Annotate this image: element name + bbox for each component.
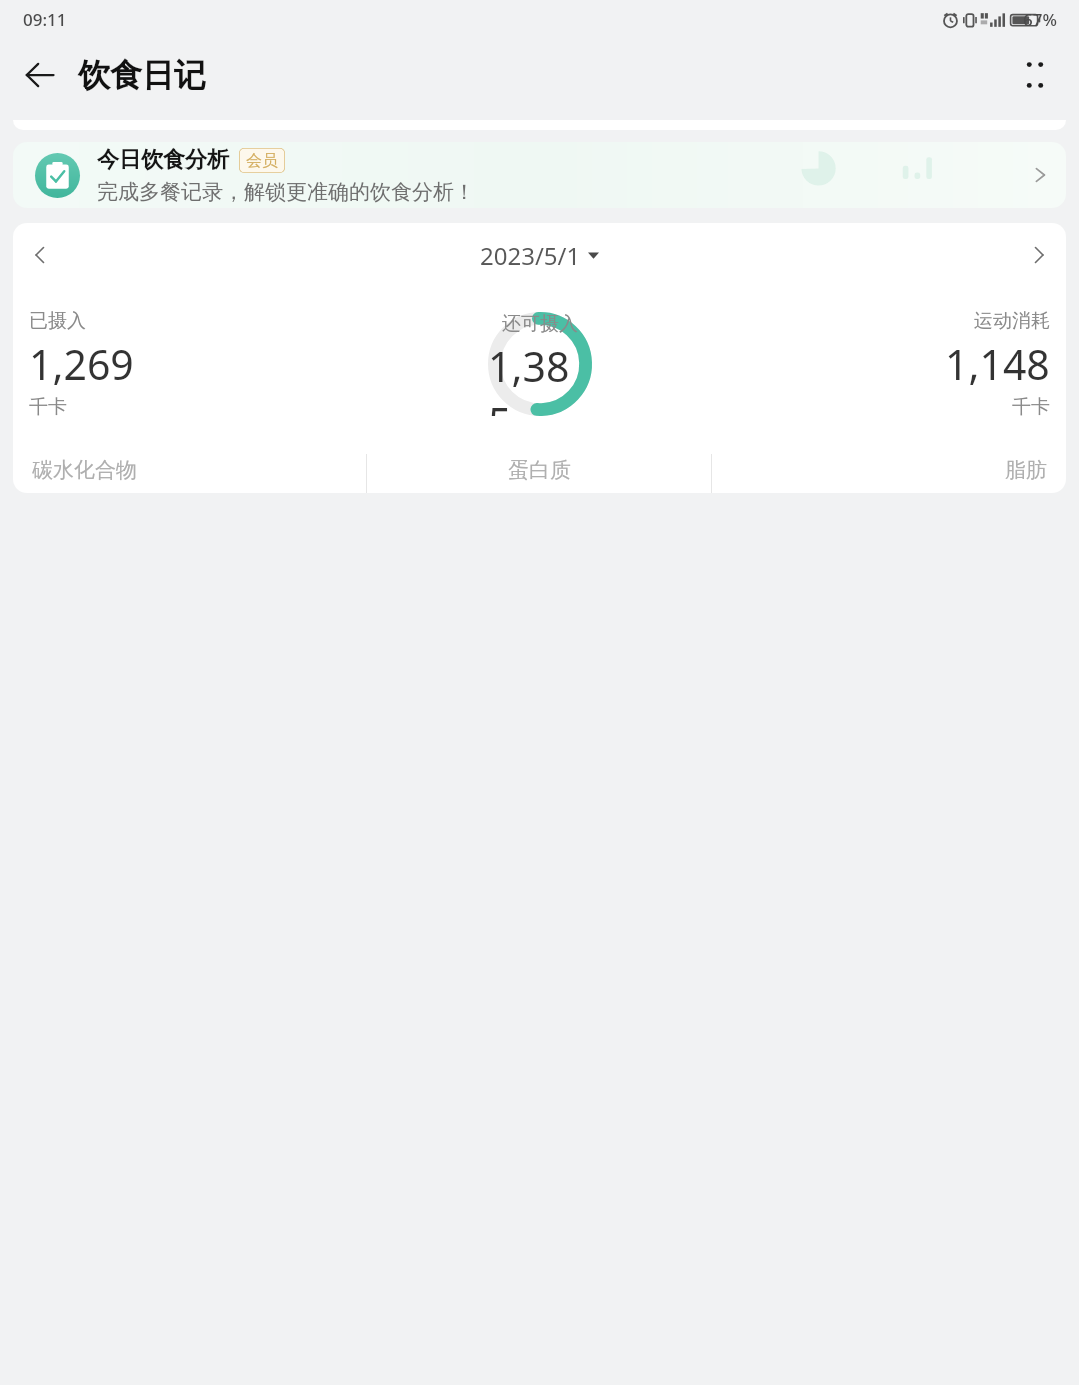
button[interactable]: Back (12, 47, 68, 103)
button[interactable]: 已摄入 (23, 305, 140, 423)
staticText: 脂肪 (1005, 457, 1047, 483)
staticText: 饮食日记 (78, 55, 206, 95)
button[interactable]: 碳水化合物 (23, 454, 366, 493)
staticText: 会员 (246, 151, 278, 171)
staticText: 1,385 (488, 338, 592, 416)
button[interactable]: 今日饮食分析 (13, 142, 1066, 208)
staticText: 67% (1023, 8, 1057, 31)
button[interactable]: Next day (1016, 235, 1062, 275)
staticText: 千卡 (1012, 395, 1050, 419)
staticText: 2023/5/1 (480, 239, 581, 272)
button[interactable]: 蛋白质 (367, 454, 711, 493)
staticText: 蛋白质 (508, 457, 571, 483)
staticText: 还可摄入 (502, 312, 578, 336)
staticText: 1,148 (945, 336, 1050, 392)
button[interactable]: Previous day (17, 235, 63, 275)
staticText: 09:11 (23, 8, 67, 31)
button[interactable]: More options (1007, 47, 1063, 103)
staticText: 运动消耗 (974, 309, 1050, 333)
button[interactable]: 运动消耗 (939, 305, 1056, 423)
staticText: 1,269 (29, 336, 134, 392)
button[interactable]: 脂肪 (712, 454, 1056, 493)
button[interactable]: 2023/5/1 (472, 236, 607, 275)
staticText: 碳水化合物 (32, 457, 137, 483)
staticText: 已摄入 (29, 309, 86, 333)
staticText: 今日饮食分析 (97, 146, 229, 174)
staticText: 完成多餐记录，解锁更准确的饮食分析！ (97, 179, 475, 205)
staticText: 千卡 (29, 395, 67, 419)
